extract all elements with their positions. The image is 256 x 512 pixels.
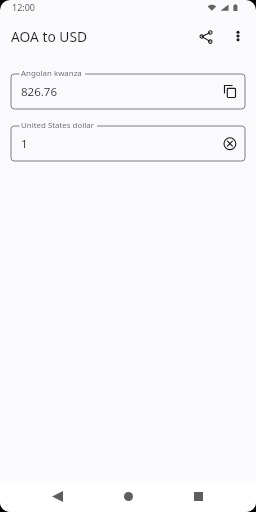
- staticText: Angolan kwanza: [21, 68, 82, 79]
- staticText: AOA to USD: [11, 27, 88, 46]
- button[interactable]: Home: [107, 481, 149, 512]
- button[interactable]: United States dollar: [11, 126, 245, 161]
- staticText: United States dollar: [21, 120, 95, 131]
- button[interactable]: Clear: [218, 130, 242, 154]
- staticText: 12:00: [12, 1, 36, 13]
- staticText: 826.76: [21, 84, 57, 100]
- button[interactable]: Share: [194, 25, 220, 51]
- staticText: 1: [21, 136, 28, 152]
- button[interactable]: More options: [225, 23, 251, 49]
- button[interactable]: Copy: [218, 78, 242, 102]
- button[interactable]: Back: [36, 481, 78, 512]
- button[interactable]: Recent apps: [177, 481, 219, 512]
- button[interactable]: Angolan kwanza: [11, 74, 245, 109]
